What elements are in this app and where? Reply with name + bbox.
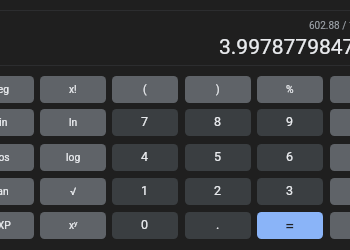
staticText: ln	[69, 116, 78, 128]
staticText: 1	[141, 183, 149, 198]
staticText: cos	[0, 151, 10, 163]
staticText: (	[143, 83, 147, 95]
staticText: 2	[214, 183, 222, 198]
staticText: =	[285, 216, 295, 236]
staticText: 602.88 / 150	[309, 20, 350, 32]
button[interactable]: x!	[40, 76, 106, 103]
button[interactable]: log	[40, 144, 106, 171]
button[interactable]: EXP	[0, 212, 34, 239]
staticText: EXP	[0, 219, 11, 231]
button[interactable]: AC	[330, 76, 350, 103]
staticText: deg	[0, 83, 10, 95]
button[interactable]: +	[330, 212, 350, 239]
button[interactable]: .	[185, 212, 251, 239]
button[interactable]: 9	[257, 109, 323, 136]
button[interactable]: sin	[0, 109, 34, 136]
button[interactable]: %	[257, 76, 323, 103]
staticText: tan	[0, 185, 9, 197]
button[interactable]: 3	[257, 178, 323, 205]
staticText: %	[286, 83, 294, 95]
button[interactable]: 0	[112, 212, 178, 239]
staticText: xy	[69, 219, 78, 231]
staticText: 4	[141, 149, 149, 164]
staticText: 6	[286, 149, 294, 164]
button[interactable]: =	[257, 212, 323, 239]
button[interactable]: 4	[112, 144, 178, 171]
button[interactable]: 1	[112, 178, 178, 205]
button[interactable]: 7	[112, 109, 178, 136]
button[interactable]: cos	[0, 144, 34, 171]
button[interactable]: ÷	[330, 109, 350, 136]
button[interactable]: x^y	[40, 212, 106, 239]
button[interactable]: 5	[185, 144, 251, 171]
staticText: x!	[69, 83, 77, 95]
staticText: 3	[286, 183, 294, 198]
button[interactable]: 8	[185, 109, 251, 136]
button[interactable]: tan	[0, 178, 34, 205]
staticText: 5	[214, 149, 222, 164]
staticText: 8	[214, 114, 222, 129]
button[interactable]: deg	[0, 76, 34, 103]
button[interactable]: (	[112, 76, 178, 103]
staticText: √	[70, 185, 77, 197]
button[interactable]: ×	[330, 144, 350, 171]
button[interactable]: )	[185, 76, 251, 103]
staticText: 7	[141, 114, 149, 129]
staticText: log	[66, 151, 81, 163]
button[interactable]: ln	[40, 109, 106, 136]
staticText: )	[216, 83, 220, 95]
button[interactable]: 6	[257, 144, 323, 171]
button[interactable]: 2	[185, 178, 251, 205]
button[interactable]: √	[40, 178, 106, 205]
staticText: 3.9978779847	[219, 35, 350, 59]
staticText: 0	[141, 217, 149, 232]
staticText: .	[216, 217, 220, 232]
staticText: sin	[0, 116, 8, 128]
button[interactable]: −	[330, 178, 350, 205]
staticText: 9	[286, 114, 294, 129]
